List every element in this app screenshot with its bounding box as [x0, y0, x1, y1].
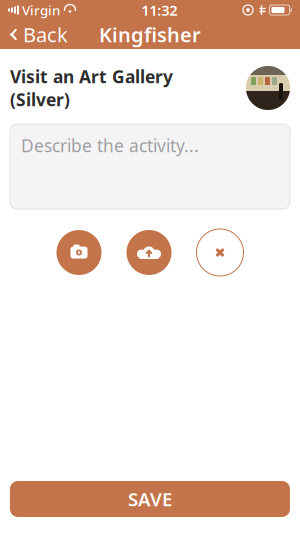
staticText: Virgin [22, 1, 60, 19]
button[interactable]: Back [0, 20, 77, 48]
button[interactable]: Describe the activity... [10, 124, 290, 209]
staticText: Visit an Art Gallery (Silver) [10, 65, 173, 111]
staticText: Kingfisher [99, 21, 201, 48]
staticText: Back [23, 21, 68, 48]
button[interactable]: Upload photo [126, 230, 171, 275]
button[interactable]: Take photo [56, 230, 101, 275]
staticText: Describe the activity... [21, 134, 199, 157]
staticText: SAVE [128, 487, 172, 511]
staticText: 11:32 [141, 0, 177, 20]
button[interactable]: Remove photo [196, 229, 243, 276]
button[interactable]: SAVE [10, 481, 290, 517]
